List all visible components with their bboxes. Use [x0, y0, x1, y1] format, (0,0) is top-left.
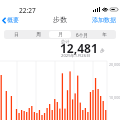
button[interactable]: 周 [27, 31, 49, 38]
staticText: 10,000 [109, 95, 120, 100]
button[interactable]: 6个月 [71, 31, 93, 38]
staticText: 22:27 [19, 6, 36, 15]
staticText: 概要 [7, 16, 19, 24]
staticText: 12,481 [60, 40, 98, 56]
staticText: 20,000 [109, 62, 120, 67]
staticText: 总计 [61, 39, 70, 44]
button[interactable]: 年 [93, 31, 115, 38]
staticText: 步数 [53, 15, 67, 24]
staticText: 年 [102, 32, 107, 38]
button[interactable]: 概要 [0, 16, 24, 29]
button[interactable]: 月 [49, 31, 71, 38]
button[interactable]: 添加数据 [92, 16, 120, 29]
staticText: 月 [58, 32, 63, 38]
staticText: 日 [14, 32, 19, 38]
button[interactable]: 日 [5, 31, 27, 38]
staticText: 周 [36, 32, 41, 38]
staticText: 步 [100, 48, 105, 54]
staticText: 6个月 [76, 32, 88, 38]
staticText: 2025年1月26日 [61, 53, 91, 59]
